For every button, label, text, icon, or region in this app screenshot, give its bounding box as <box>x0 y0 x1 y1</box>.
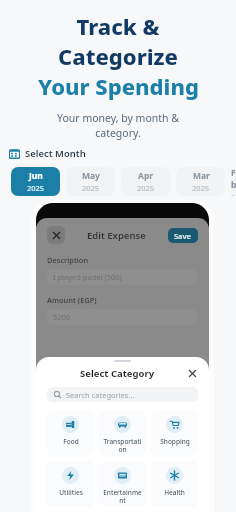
button[interactable]: Shopping <box>151 410 198 456</box>
staticText: Mar <box>193 170 210 182</box>
staticText: 2025 <box>192 183 210 193</box>
button[interactable]: Close <box>187 368 198 379</box>
button[interactable]: Entertainme nt <box>99 461 146 507</box>
button[interactable]: I played padel (500) <box>47 269 198 285</box>
staticText: Entertainme nt <box>103 488 142 505</box>
button[interactable]: Apr <box>121 167 170 196</box>
staticText: Categorize <box>58 41 178 71</box>
staticText: I played padel (500) <box>53 272 122 282</box>
staticText: Shopping <box>160 437 190 446</box>
staticText: May <box>82 170 100 182</box>
staticText: Jun <box>29 170 43 182</box>
staticText: Track & <box>76 11 160 41</box>
staticText: Your Spending <box>38 71 199 101</box>
staticText: Select Category <box>80 367 155 380</box>
button[interactable]: Mar <box>176 167 225 196</box>
staticText: Transportati on <box>103 437 142 454</box>
staticText: 2025 <box>82 183 100 193</box>
button[interactable]: Transportati on <box>99 410 146 456</box>
button[interactable]: Health <box>151 461 198 507</box>
staticText: Health <box>164 488 185 497</box>
staticText: Select Month <box>25 147 86 160</box>
button[interactable]: Food <box>47 410 94 456</box>
staticText: Your money, by month & category. <box>57 111 179 140</box>
staticText: 2025 <box>231 192 236 196</box>
staticText: Apr <box>138 170 154 182</box>
staticText: Feb <box>231 167 236 191</box>
staticText: Food <box>63 437 79 446</box>
button[interactable]: May <box>66 167 115 196</box>
staticText: Utilities <box>59 488 83 497</box>
button[interactable]: Search categories... <box>47 387 198 402</box>
staticText: Amount (EGP) <box>47 295 97 305</box>
staticText: Search categories... <box>66 390 135 400</box>
button[interactable]: Utilities <box>47 461 94 507</box>
staticText: 5200 <box>53 312 71 322</box>
staticText: 2025 <box>27 183 45 193</box>
button[interactable]: Feb <box>231 167 236 196</box>
button[interactable]: Close <box>47 226 65 244</box>
staticText: Description <box>47 255 89 265</box>
staticText: Edit Expense <box>87 229 146 242</box>
staticText: Save <box>174 231 192 241</box>
button[interactable]: Save <box>168 228 198 243</box>
button[interactable]: Jun <box>11 167 60 196</box>
staticText: 2025 <box>137 183 155 193</box>
